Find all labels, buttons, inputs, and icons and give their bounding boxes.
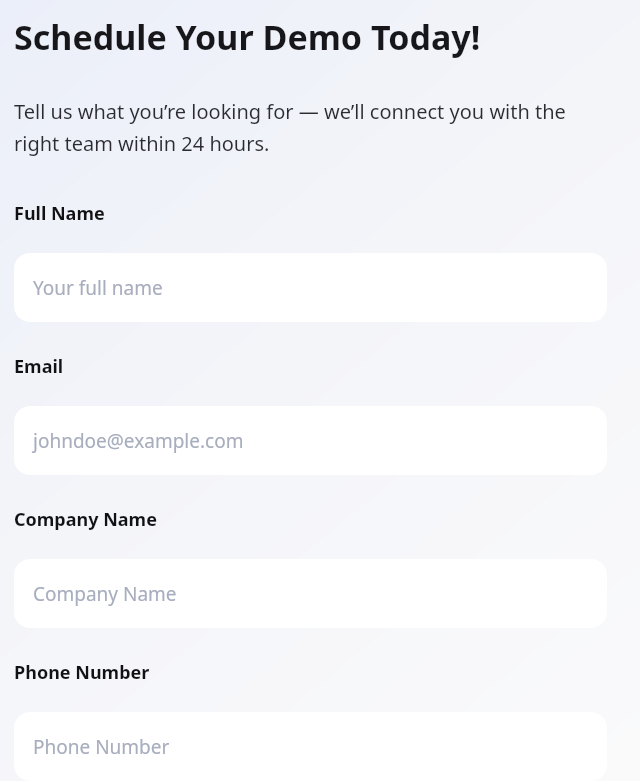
- staticText: Schedule Your Demo Today!: [14, 14, 481, 60]
- button[interactable]: johndoe@example.com: [14, 406, 607, 475]
- staticText: Company Name: [33, 581, 177, 607]
- button[interactable]: Phone Number: [14, 712, 607, 781]
- staticText: Phone Number: [33, 734, 170, 760]
- staticText: Full Name: [14, 201, 105, 226]
- staticText: Email: [14, 354, 64, 379]
- staticText: Tell us what you’re looking for — we’ll …: [14, 98, 594, 157]
- staticText: Company Name: [14, 507, 157, 532]
- button[interactable]: Company Name: [14, 559, 607, 628]
- staticText: Your full name: [33, 275, 163, 301]
- button[interactable]: Your full name: [14, 253, 607, 322]
- staticText: Phone Number: [14, 660, 150, 685]
- staticText: johndoe@example.com: [33, 428, 244, 454]
